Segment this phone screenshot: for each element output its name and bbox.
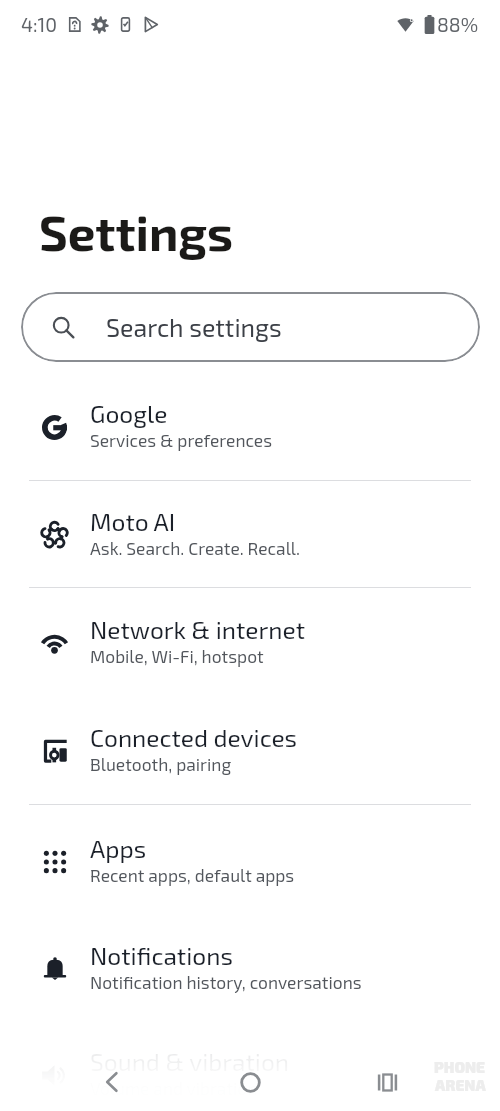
button[interactable]: Notifications (0, 915, 500, 1023)
staticText: 4:10 (21, 13, 58, 36)
staticText: Sound & vibration (90, 1047, 290, 1076)
staticText: ARENA (435, 1076, 486, 1094)
button[interactable]: Back (92, 1062, 132, 1102)
staticText: Ask. Search. Create. Recall. (90, 538, 300, 559)
staticText: Network & internet (90, 615, 306, 644)
staticText: Settings (39, 202, 233, 261)
staticText: Moto AI (90, 507, 176, 536)
staticText: Notification history, conversations (90, 972, 362, 993)
button[interactable]: Sound & vibration (0, 1021, 500, 1111)
button[interactable]: Recent apps (367, 1062, 407, 1102)
staticText: 88% (437, 13, 479, 36)
staticText: Mobile, Wi-Fi, hotspot (90, 646, 264, 667)
button[interactable]: Google (0, 373, 500, 481)
staticText: Search settings (106, 312, 282, 342)
staticText: Bluetooth, pairing (90, 754, 232, 775)
staticText: Notifications (90, 941, 233, 970)
button[interactable]: Search settings (21, 292, 480, 362)
button[interactable]: Moto AI (0, 481, 500, 589)
staticText: Apps (90, 834, 147, 863)
button[interactable]: Home (230, 1062, 270, 1102)
button[interactable]: Apps (0, 808, 500, 916)
staticText: Connected devices (90, 723, 298, 752)
button[interactable]: Connected devices (0, 697, 500, 805)
button[interactable]: Network & internet (0, 589, 500, 697)
staticText: Volume and vibration (90, 1078, 258, 1099)
staticText: Services & preferences (90, 430, 273, 451)
staticText: PHONE (434, 1058, 486, 1076)
staticText: Google (90, 399, 168, 428)
staticText: Recent apps, default apps (90, 865, 295, 886)
